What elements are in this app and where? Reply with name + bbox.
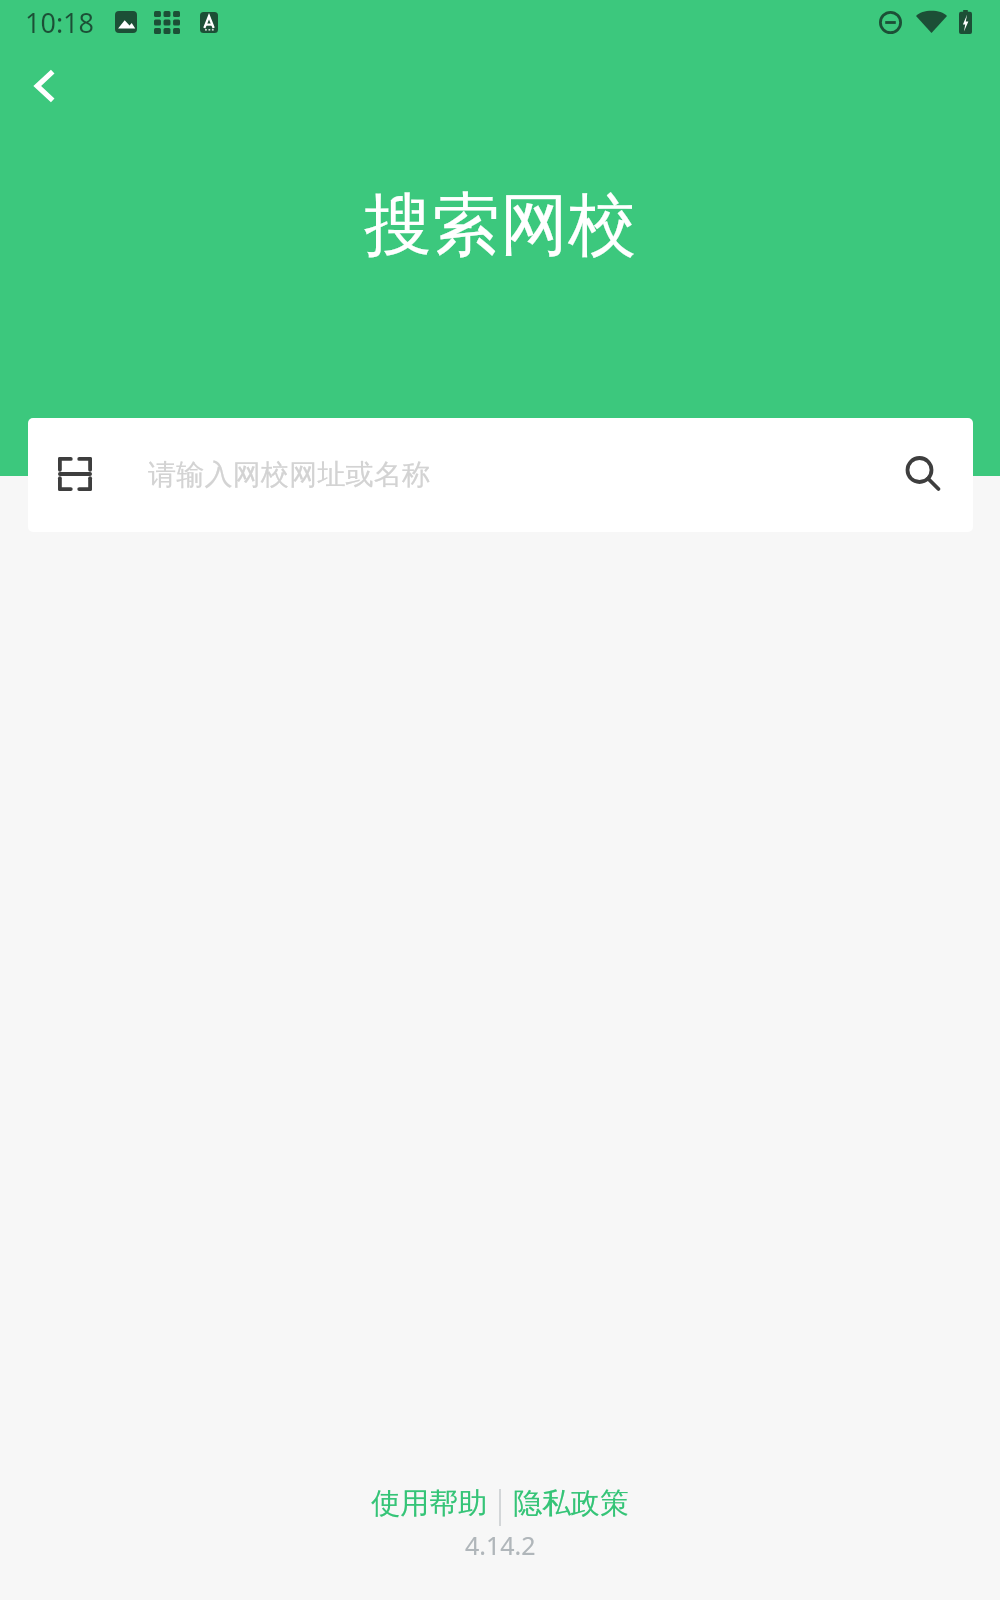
button[interactable]: 请输入网校网址或名称 <box>124 418 884 532</box>
staticText: 搜索网校 <box>0 183 1000 269</box>
button[interactable]: Scan QR code <box>42 441 108 507</box>
button[interactable]: Search <box>890 441 956 507</box>
button[interactable]: 隐私政策 <box>507 1477 635 1530</box>
staticText: 4.14.2 <box>465 1528 536 1562</box>
button[interactable]: 使用帮助 <box>365 1477 493 1530</box>
staticText: 隐私政策 <box>513 1485 629 1522</box>
staticText: 请输入网校网址或名称 <box>148 457 430 493</box>
button[interactable]: Back <box>15 57 73 115</box>
staticText: 使用帮助 <box>371 1485 487 1522</box>
staticText: 10:18 <box>25 4 95 41</box>
